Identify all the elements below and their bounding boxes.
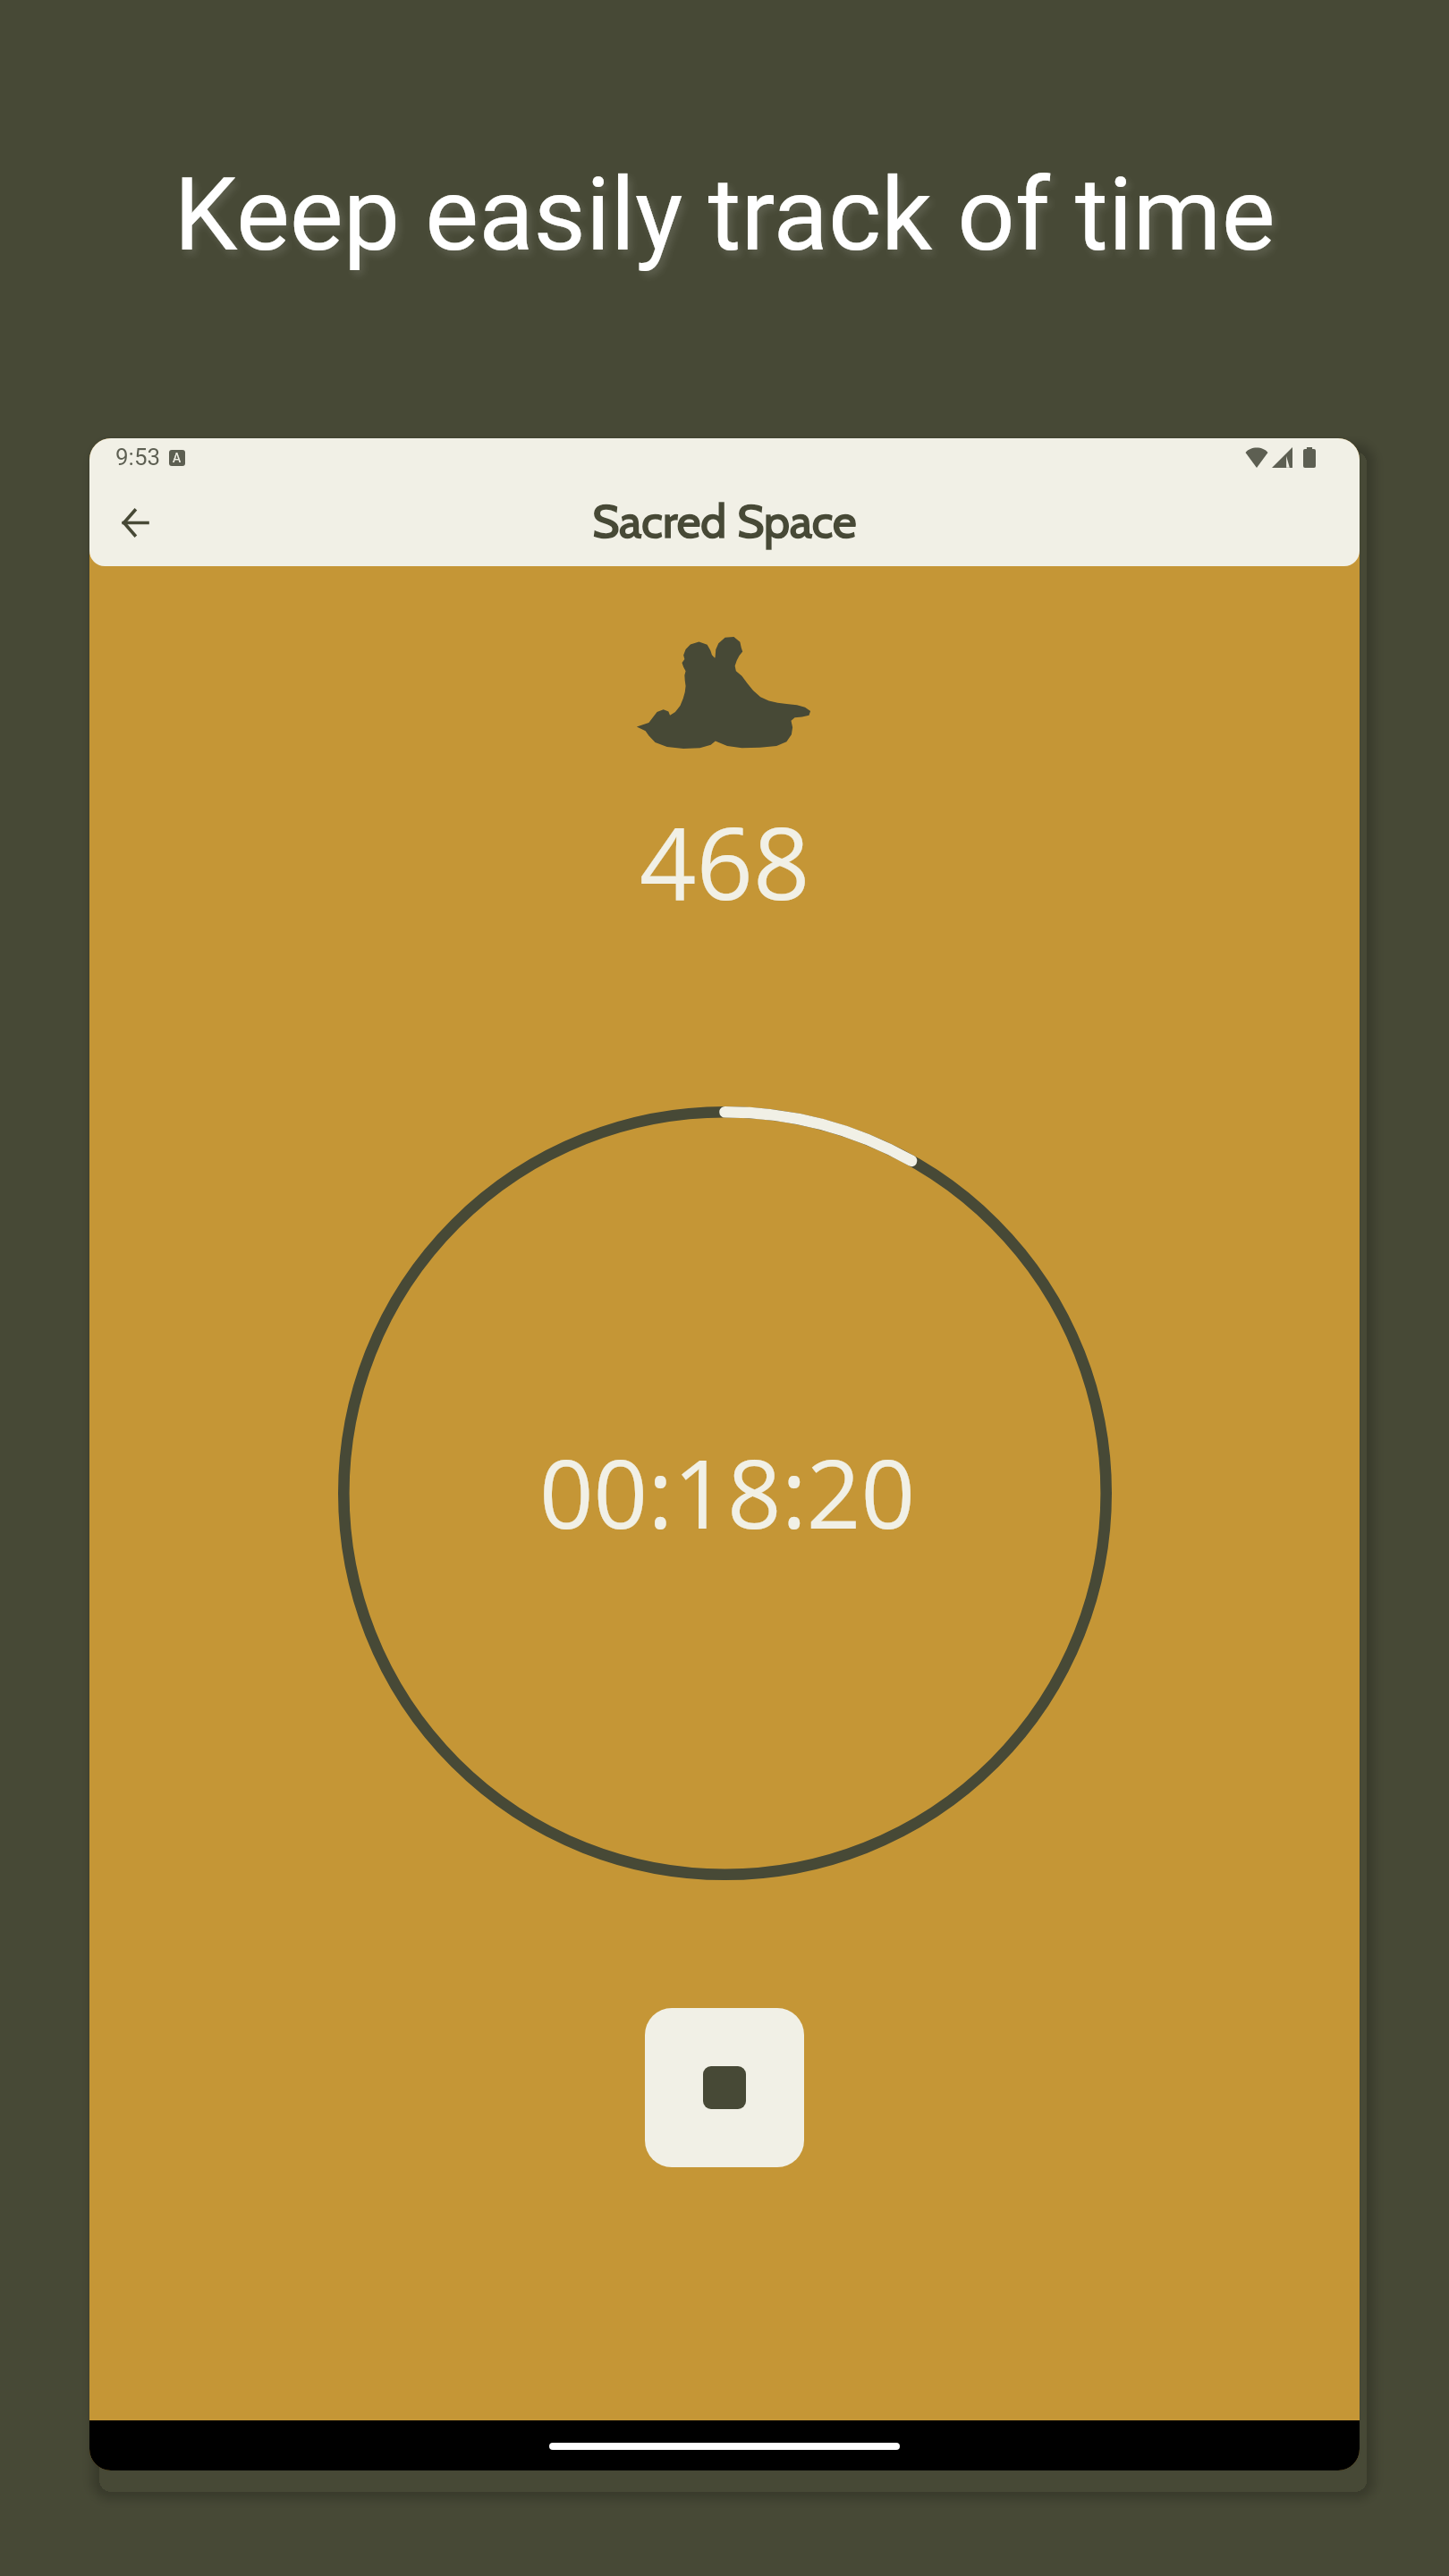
staticText: 9:53 [115, 444, 161, 470]
button[interactable]: Stop timer [645, 2008, 804, 2167]
staticText: 00:18:20 [539, 1428, 916, 1556]
button[interactable]: Back [99, 487, 171, 558]
staticText: Keep easily track of time [0, 156, 1449, 274]
staticText: 468 [640, 793, 810, 928]
staticText: A [173, 451, 182, 465]
staticText: Sacred Space [592, 493, 857, 549]
